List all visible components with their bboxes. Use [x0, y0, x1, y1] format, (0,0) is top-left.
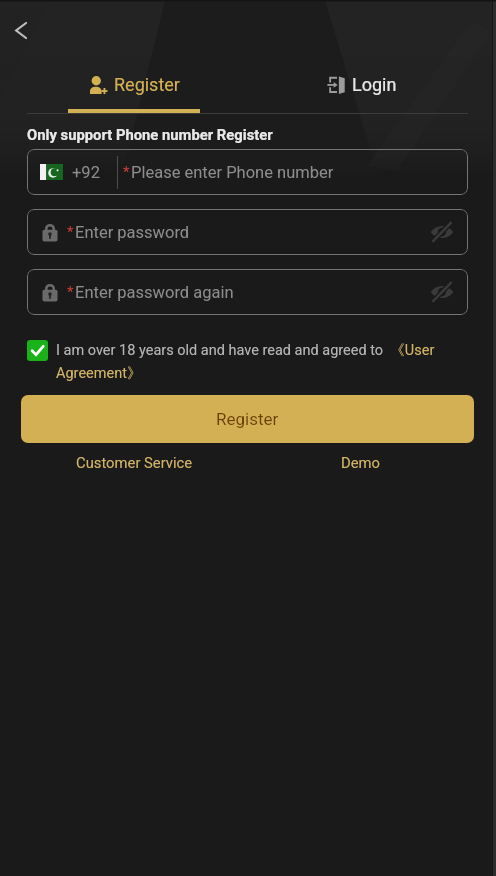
button[interactable]: Customer Service [21, 454, 247, 471]
button[interactable]: * [27, 269, 468, 315]
button[interactable]: * [27, 209, 468, 255]
staticText: I am over 18 years old and have read and… [56, 341, 468, 383]
staticText: Register [114, 74, 180, 95]
staticText: Please enter Phone number [131, 163, 334, 182]
staticText: +92 [72, 163, 100, 182]
staticText: * [67, 283, 74, 301]
button[interactable]: Register [20, 74, 248, 105]
button[interactable]: Demo [247, 454, 474, 471]
staticText: Demo [341, 454, 380, 471]
button[interactable]: Login [248, 74, 476, 105]
staticText: Enter password again [75, 283, 234, 302]
staticText: Customer Service [76, 454, 193, 471]
staticText: Login [352, 74, 397, 95]
staticText: Register [216, 409, 279, 429]
button[interactable]: Show password [429, 279, 455, 305]
button[interactable]: +92 [27, 149, 468, 195]
button[interactable]: Back [5, 15, 36, 46]
button[interactable]: Agree to user agreement [27, 340, 48, 361]
staticText: * [123, 163, 130, 181]
staticText: Only support Phone number Register [27, 126, 273, 143]
button[interactable]: Register [21, 395, 474, 443]
staticText: * [67, 223, 74, 241]
staticText: Enter password [75, 223, 190, 242]
button[interactable]: Show password [429, 219, 455, 245]
